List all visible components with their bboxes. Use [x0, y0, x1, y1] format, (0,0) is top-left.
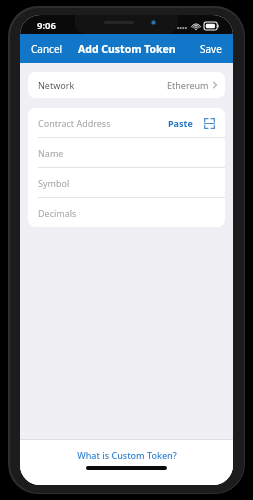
staticText: Paste — [168, 117, 193, 129]
staticText: Add Custom Token — [78, 42, 176, 56]
button[interactable]: What is Custom Token? — [67, 445, 187, 465]
staticText: Symbol — [38, 177, 70, 189]
staticText: Name — [38, 147, 64, 159]
staticText: Cancel — [31, 42, 63, 56]
staticText: Contract Address — [38, 117, 111, 129]
button[interactable]: Scan QR code — [202, 116, 216, 130]
staticText: Network — [38, 79, 75, 91]
staticText: Save — [200, 42, 222, 56]
button[interactable]: Paste — [166, 114, 195, 132]
staticText: Ethereum — [167, 79, 209, 91]
button[interactable]: Name — [28, 138, 225, 167]
button[interactable]: Contract Address — [28, 108, 225, 137]
button[interactable]: Decimals — [28, 198, 225, 227]
staticText: What is Custom Token? — [77, 449, 177, 461]
button[interactable]: Network — [28, 72, 225, 98]
button[interactable]: Save — [189, 36, 233, 62]
staticText: Decimals — [38, 207, 77, 219]
button[interactable]: Cancel — [20, 36, 74, 62]
button[interactable]: Symbol — [28, 168, 225, 197]
staticText: 9:06 — [37, 19, 56, 32]
